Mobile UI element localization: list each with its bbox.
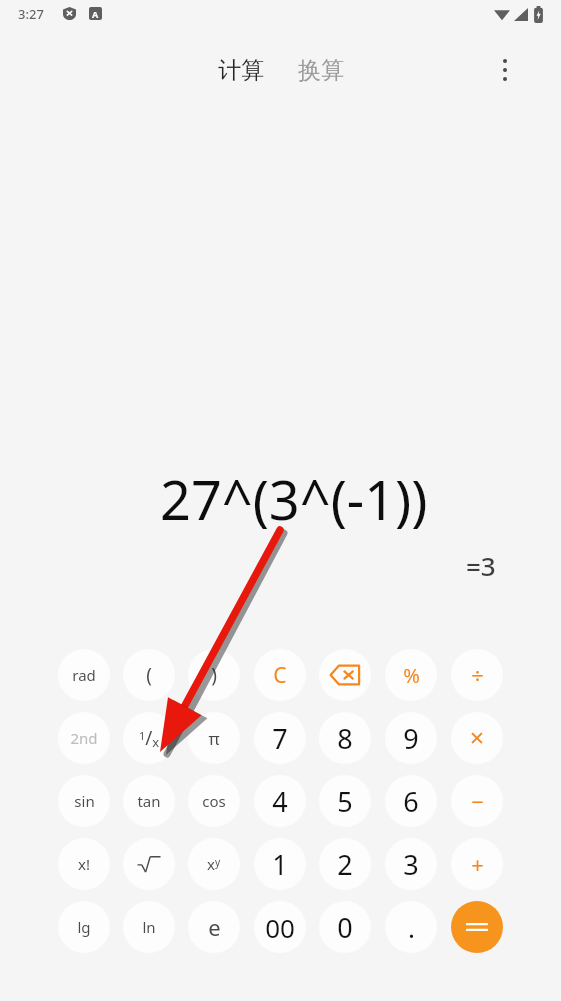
button[interactable]: 6 bbox=[385, 775, 437, 827]
staticText: 8 bbox=[337, 720, 353, 757]
staticText: 1/x bbox=[139, 725, 160, 751]
button[interactable]: 1 bbox=[254, 838, 306, 890]
staticText: 27^(3^(-1)) bbox=[160, 462, 428, 536]
staticText: xy bbox=[207, 854, 221, 874]
button[interactable]: 3 bbox=[385, 838, 437, 890]
button[interactable]: 4 bbox=[254, 775, 306, 827]
staticText: A bbox=[92, 8, 99, 20]
staticText: ( bbox=[146, 662, 152, 688]
button[interactable]: ( bbox=[123, 649, 175, 701]
staticText: ln bbox=[142, 917, 156, 937]
staticText: % bbox=[403, 662, 420, 689]
button[interactable]: + bbox=[451, 838, 503, 890]
button[interactable]: Equals bbox=[451, 901, 503, 953]
staticText: 计算 bbox=[218, 56, 264, 85]
button[interactable]: Backspace bbox=[319, 649, 371, 701]
staticText: =3 bbox=[466, 548, 496, 583]
button[interactable]: C bbox=[254, 649, 306, 701]
staticText: 9 bbox=[403, 720, 419, 757]
staticText: 4 bbox=[272, 783, 288, 820]
button[interactable]: lg bbox=[58, 901, 110, 953]
staticText: + bbox=[471, 849, 484, 879]
button[interactable]: 5 bbox=[319, 775, 371, 827]
staticText: tan bbox=[137, 791, 161, 811]
staticText: x! bbox=[78, 854, 90, 874]
button[interactable]: 计算 bbox=[212, 50, 270, 91]
button[interactable]: x! bbox=[58, 838, 110, 890]
staticText: e bbox=[208, 912, 221, 942]
button[interactable]: 9 bbox=[385, 712, 437, 764]
button[interactable]: ✕ bbox=[451, 712, 503, 764]
staticText: ) bbox=[211, 662, 217, 688]
staticText: 2 bbox=[337, 846, 353, 883]
staticText: 3:27 bbox=[18, 5, 44, 23]
button[interactable]: ÷ bbox=[451, 649, 503, 701]
staticText: ✕ bbox=[469, 727, 485, 749]
staticText: 0 bbox=[337, 909, 353, 946]
staticText: ÷ bbox=[471, 660, 484, 690]
staticText: C bbox=[273, 661, 287, 690]
button[interactable]: . bbox=[385, 901, 437, 953]
button[interactable]: 1/x bbox=[123, 712, 175, 764]
button[interactable]: rad bbox=[58, 649, 110, 701]
button[interactable]: 8 bbox=[319, 712, 371, 764]
button[interactable]: 7 bbox=[254, 712, 306, 764]
staticText: lg bbox=[77, 917, 91, 937]
button[interactable]: 换算 bbox=[292, 50, 350, 91]
staticText: 7 bbox=[272, 720, 288, 757]
button[interactable]: 2 bbox=[319, 838, 371, 890]
button[interactable]: xy bbox=[188, 838, 240, 890]
button[interactable]: π bbox=[188, 712, 240, 764]
staticText: 6 bbox=[403, 783, 419, 820]
button[interactable]: cos bbox=[188, 775, 240, 827]
button[interactable]: tan bbox=[123, 775, 175, 827]
button[interactable]: ) bbox=[188, 649, 240, 701]
staticText: 换算 bbox=[298, 56, 344, 85]
button[interactable]: More options bbox=[483, 48, 527, 92]
button[interactable] bbox=[123, 838, 175, 890]
staticText: − bbox=[471, 786, 484, 816]
button[interactable]: − bbox=[451, 775, 503, 827]
staticText: rad bbox=[72, 665, 96, 685]
staticText: π bbox=[208, 727, 220, 750]
button[interactable]: % bbox=[385, 649, 437, 701]
staticText: 5 bbox=[337, 783, 353, 820]
staticText: sin bbox=[74, 791, 95, 811]
staticText: 2nd bbox=[70, 728, 98, 748]
staticText: . bbox=[408, 910, 415, 945]
staticText: 1 bbox=[272, 846, 288, 883]
staticText: 3 bbox=[403, 846, 419, 883]
button[interactable]: 2nd bbox=[58, 712, 110, 764]
staticText: cos bbox=[202, 791, 226, 811]
button[interactable]: sin bbox=[58, 775, 110, 827]
button[interactable]: e bbox=[188, 901, 240, 953]
staticText: 00 bbox=[265, 910, 295, 945]
button[interactable]: 00 bbox=[254, 901, 306, 953]
button[interactable]: 0 bbox=[319, 901, 371, 953]
button[interactable]: ln bbox=[123, 901, 175, 953]
